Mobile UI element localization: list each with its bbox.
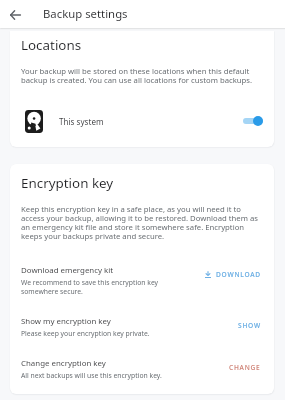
staticText: Show my encryption key: [21, 316, 111, 327]
staticText: Please keep your encryption key private.: [21, 329, 150, 338]
staticText: Locations: [21, 36, 82, 54]
staticText: Download emergency kit: [21, 265, 114, 276]
staticText: DOWNLOAD: [216, 270, 261, 279]
button[interactable]: Download emergency kit: [10, 265, 274, 299]
staticText: SHOW: [238, 321, 261, 330]
staticText: Change encryption key: [21, 358, 106, 369]
staticText: This system: [59, 116, 104, 127]
staticText: Backup settings: [43, 6, 128, 21]
button[interactable]: Change encryption key: [10, 358, 274, 384]
staticText: All next backups will use this encryptio…: [21, 371, 162, 380]
staticText: CHANGE: [229, 363, 261, 372]
button[interactable]: Back: [4, 3, 27, 26]
staticText: Encryption key: [21, 174, 114, 192]
button[interactable]: Show my encryption key: [10, 316, 274, 342]
button[interactable]: This system toggle: [243, 113, 263, 129]
staticText: Keep this encryption key in a safe place…: [21, 204, 266, 241]
staticText: Your backup will be stored on these loca…: [21, 66, 264, 85]
button[interactable]: This system: [10, 105, 274, 137]
staticText: We recommend to save this encryption key…: [21, 278, 171, 296]
